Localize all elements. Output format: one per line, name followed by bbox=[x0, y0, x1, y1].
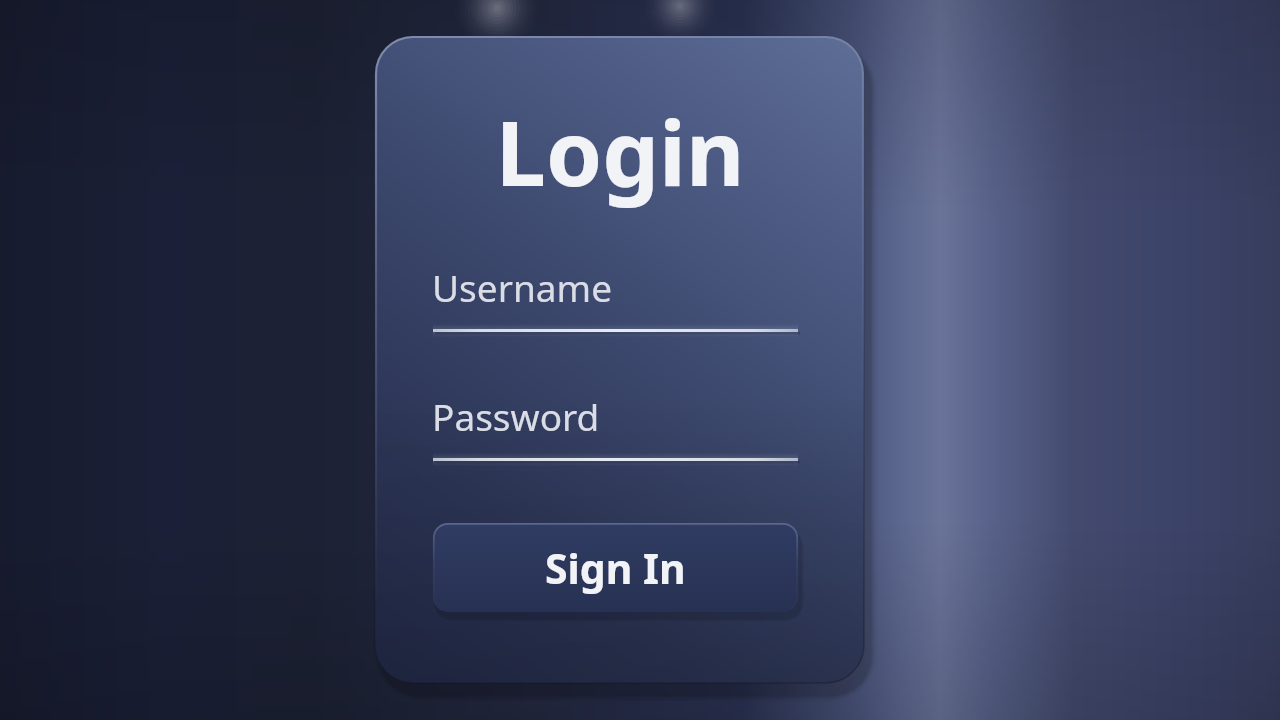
button[interactable]: Sign In bbox=[433, 523, 798, 612]
button[interactable]: Username bbox=[432, 262, 613, 312]
staticText: Login bbox=[440, 90, 800, 210]
staticText: Sign In bbox=[545, 540, 686, 596]
button[interactable]: Password bbox=[432, 391, 600, 441]
